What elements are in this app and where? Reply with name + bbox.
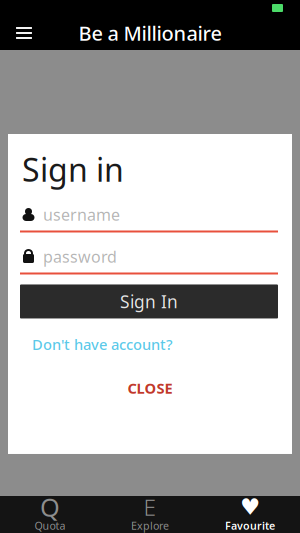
button[interactable]: Don't have account? [8,332,173,356]
staticText: password [43,246,117,267]
button[interactable]: Sign In [20,284,278,318]
staticText: Favourite [225,518,275,533]
staticText: Sign in [22,148,124,190]
staticText: Don't have account? [32,334,173,354]
staticText: Explore [131,518,169,533]
staticText: Quota [34,518,65,533]
button[interactable]: Q [0,496,100,533]
staticText: Sign In [120,290,178,313]
staticText: Be a Millionaire [78,20,221,46]
button[interactable]: Menu [6,16,42,50]
button[interactable]: E [100,496,200,533]
staticText: Q [40,490,60,524]
staticText: ♥ [240,494,260,520]
staticText: E [143,492,156,522]
button[interactable]: ♥ [200,496,300,533]
staticText: CLOSE [127,378,172,398]
staticText: username [43,204,120,225]
button[interactable]: CLOSE [8,378,292,398]
